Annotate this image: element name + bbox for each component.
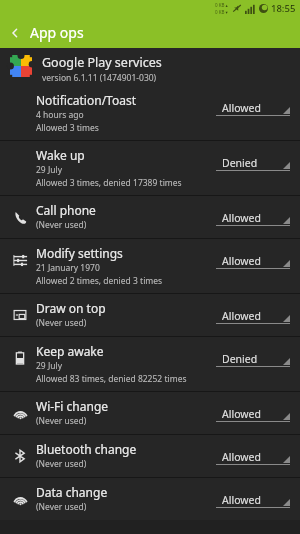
staticText: (Never used): [36, 501, 87, 513]
button[interactable]: Allowed: [216, 492, 290, 513]
staticText: Allowed 2 times, denied 3 times: [36, 275, 163, 287]
button[interactable]: Google Play services: [0, 48, 300, 86]
button[interactable]: Bluetooth change: [0, 435, 300, 477]
staticText: Notification/Toast: [36, 92, 136, 108]
staticText: Allowed: [222, 450, 261, 464]
button[interactable]: Notification/Toast: [0, 86, 300, 140]
staticText: Allowed 83 times, denied 82252 times: [36, 373, 187, 385]
staticText: Allowed: [222, 309, 261, 323]
staticText: 4 hours ago: [36, 109, 84, 121]
staticText: 21 January 1970: [36, 262, 100, 274]
button[interactable]: Wi-Fi change: [0, 392, 300, 434]
staticText: Denied: [222, 352, 258, 366]
staticText: Allowed 3 times, denied 17389 times: [36, 177, 182, 189]
staticText: Wake up: [36, 147, 85, 163]
staticText: 29 July: [36, 360, 63, 372]
staticText: Google Play services: [42, 54, 162, 71]
button[interactable]: Denied: [216, 155, 290, 176]
staticText: Call phone: [36, 202, 96, 218]
staticText: 0 KB ▴: [215, 2, 228, 8]
staticText: Allowed 3 times: [36, 122, 99, 134]
button[interactable]: Allowed: [216, 406, 290, 427]
staticText: Allowed: [222, 211, 261, 225]
button[interactable]: Data change: [0, 478, 300, 520]
button[interactable]: Allowed: [216, 100, 290, 121]
button[interactable]: Allowed: [216, 308, 290, 329]
staticText: Allowed: [222, 493, 261, 507]
staticText: Allowed: [222, 254, 261, 268]
button[interactable]: Keep awake: [0, 337, 300, 391]
staticText: Data change: [36, 484, 108, 500]
button[interactable]: Call phone: [0, 196, 300, 238]
staticText: (Never used): [36, 317, 87, 329]
staticText: version 6.1.11 (1474901-030): [42, 72, 157, 84]
staticText: 18:55: [271, 2, 296, 15]
staticText: Denied: [222, 156, 258, 170]
staticText: Bluetooth change: [36, 441, 137, 457]
other: Back: [6, 24, 24, 42]
staticText: Allowed: [222, 407, 261, 421]
staticText: Wi-Fi change: [36, 398, 109, 414]
button[interactable]: Wake up: [0, 141, 300, 195]
staticText: Keep awake: [36, 343, 104, 359]
staticText: Draw on top: [36, 300, 106, 316]
staticText: 0 KB ▾: [215, 9, 228, 15]
button[interactable]: Back: [0, 17, 300, 48]
staticText: Allowed: [222, 101, 261, 115]
staticText: Modify settings: [36, 245, 123, 261]
staticText: (Never used): [36, 219, 87, 231]
button[interactable]: Allowed: [216, 210, 290, 231]
button[interactable]: Modify settings: [0, 239, 300, 293]
staticText: 29 July: [36, 164, 63, 176]
button[interactable]: Allowed: [216, 253, 290, 274]
button[interactable]: Draw on top: [0, 294, 300, 336]
button[interactable]: Denied: [216, 351, 290, 372]
staticText: (Never used): [36, 458, 87, 470]
staticText: App ops: [30, 23, 84, 42]
staticText: (Never used): [36, 415, 87, 427]
button[interactable]: Allowed: [216, 449, 290, 470]
